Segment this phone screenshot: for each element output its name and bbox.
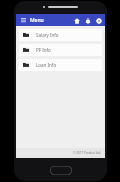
button[interactable]: Notifications	[83, 16, 92, 25]
button[interactable]: Home button	[50, 166, 72, 175]
staticText: Salary Info	[36, 32, 59, 38]
staticText: PF Info	[36, 47, 51, 53]
staticText: © 2017 Product Ltd.	[73, 151, 102, 155]
button[interactable]: PF Info	[19, 44, 102, 56]
button[interactable]: Settings	[94, 16, 103, 25]
staticText: Menu	[30, 17, 44, 24]
button[interactable]: Home	[72, 16, 81, 25]
button[interactable]: Open navigation drawer	[19, 16, 27, 24]
button[interactable]: Loan Info	[19, 59, 102, 71]
staticText: Loan Info	[36, 62, 57, 68]
button[interactable]: Salary Info	[19, 29, 102, 41]
